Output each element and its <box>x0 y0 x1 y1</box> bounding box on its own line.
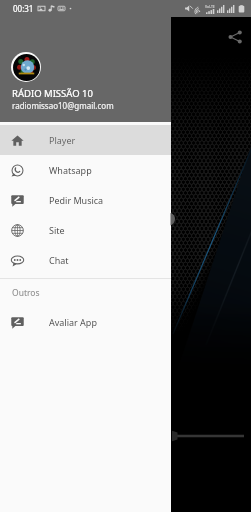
staticText: Player <box>49 134 76 146</box>
button[interactable]: Pedir Musica <box>0 185 171 215</box>
staticText: VoLTE <box>205 4 215 9</box>
button[interactable]: Whatsapp <box>0 155 171 185</box>
button[interactable]: Site <box>0 215 171 245</box>
staticText: Whatsapp <box>49 164 92 176</box>
button[interactable]: Close navigation drawer <box>171 60 251 412</box>
staticText: Pedir Musica <box>49 194 104 206</box>
staticText: Site <box>49 224 65 236</box>
staticText: 00:31 <box>13 3 34 14</box>
button[interactable]: Share <box>223 25 247 49</box>
button[interactable]: Player <box>0 125 171 155</box>
staticText: Chat <box>49 254 69 266</box>
staticText: Outros <box>12 287 40 299</box>
button[interactable]: Chat <box>0 245 171 275</box>
staticText: Avaliar App <box>49 316 97 328</box>
staticText: RÁDIO MISSÃO 10 <box>12 87 93 100</box>
staticText: radiomissao10@gmail.com <box>12 100 114 111</box>
button[interactable]: Avaliar App <box>0 307 171 337</box>
button[interactable]: Seek bar <box>0 428 251 444</box>
